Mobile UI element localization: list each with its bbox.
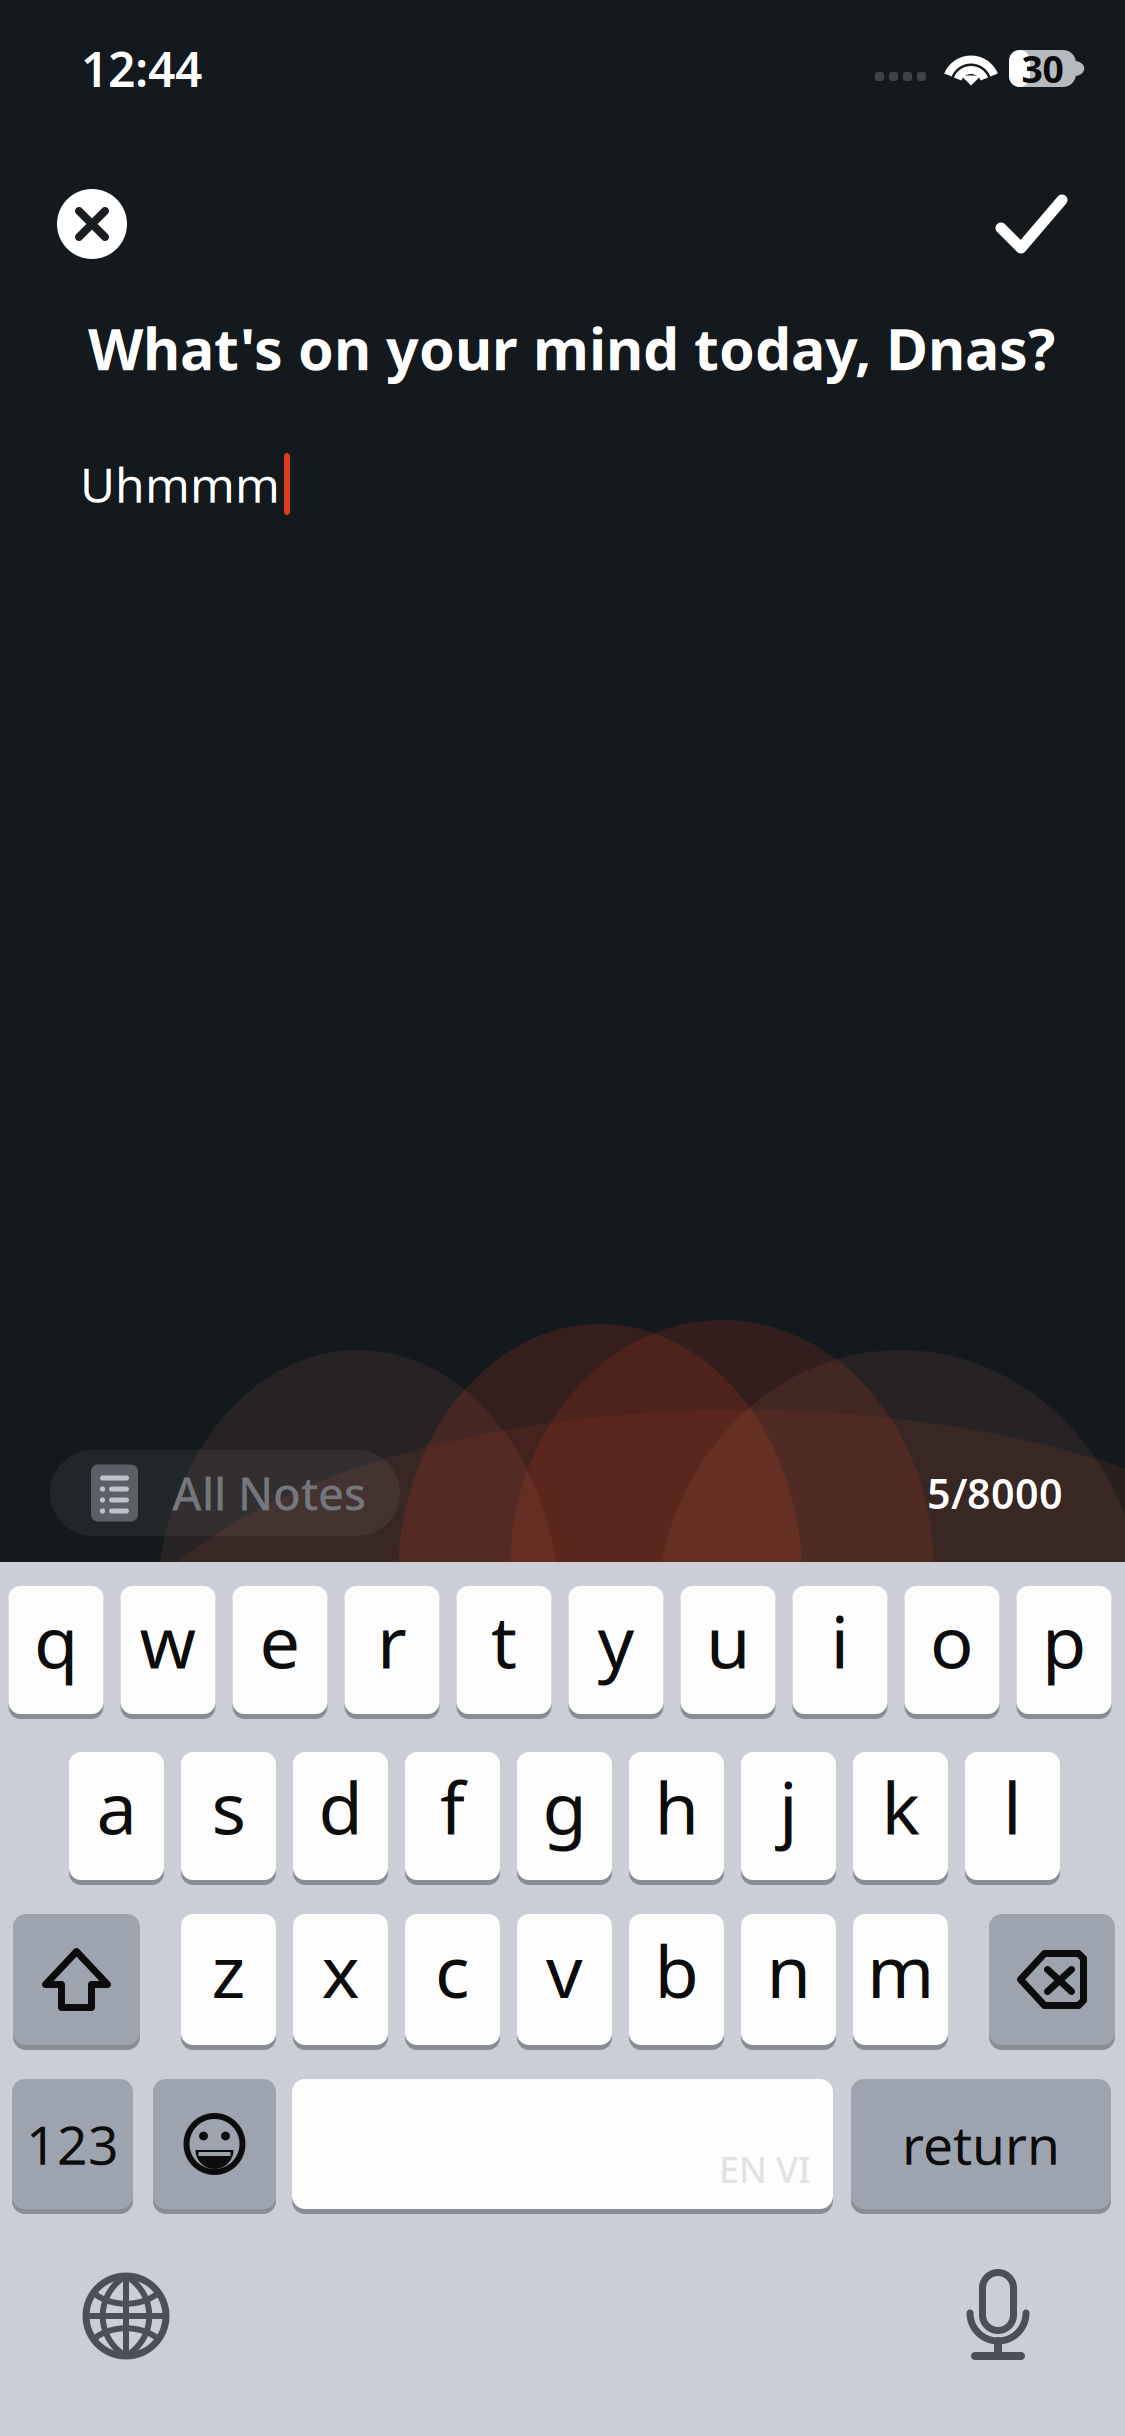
button[interactable]: a	[69, 1752, 164, 1885]
staticText: v	[546, 1922, 583, 2018]
staticText: h	[654, 1759, 698, 1854]
button[interactable]: y	[568, 1586, 663, 1719]
button[interactable]: n	[741, 1914, 836, 2050]
button[interactable]: u	[680, 1586, 775, 1719]
staticText: r	[377, 1593, 407, 1688]
staticText: 30	[1021, 44, 1063, 93]
button[interactable]: Save note	[981, 179, 1083, 269]
button[interactable]: q	[8, 1586, 103, 1719]
button[interactable]: return	[851, 2079, 1111, 2214]
staticText: b	[654, 1922, 698, 2018]
staticText: Uhmmm	[80, 452, 280, 516]
staticText: k	[881, 1759, 919, 1854]
staticText: x	[321, 1922, 359, 2018]
staticText: l	[1003, 1759, 1022, 1854]
button[interactable]: g	[517, 1752, 612, 1885]
staticText: z	[211, 1922, 245, 2018]
staticText: u	[706, 1593, 750, 1688]
staticText: g	[542, 1759, 586, 1854]
staticText: e	[259, 1593, 300, 1688]
button[interactable]	[13, 1914, 140, 2050]
button[interactable]: e	[232, 1586, 327, 1719]
staticText: EN VI	[719, 2145, 811, 2193]
staticText: y	[597, 1593, 634, 1688]
button[interactable]: z	[181, 1914, 276, 2050]
button[interactable]: m	[853, 1914, 948, 2050]
staticText: All Notes	[172, 1463, 366, 1523]
staticText: f	[440, 1759, 465, 1854]
staticText: m	[867, 1922, 934, 2018]
button[interactable]: All Notes	[50, 1450, 400, 1536]
button[interactable]: l	[965, 1752, 1060, 1885]
button[interactable]: Dictate	[943, 2261, 1053, 2371]
button[interactable]: v	[517, 1914, 612, 2050]
staticText: a	[96, 1759, 136, 1854]
button[interactable]: d	[293, 1752, 388, 1885]
button[interactable]: o	[904, 1586, 999, 1719]
staticText: p	[1042, 1593, 1086, 1688]
staticText: 12:44	[81, 37, 202, 100]
button[interactable]: p	[1016, 1586, 1111, 1719]
button[interactable]: r	[344, 1586, 439, 1719]
staticText: s	[211, 1759, 245, 1854]
button[interactable]: j	[741, 1752, 836, 1885]
button[interactable]: Close	[57, 189, 127, 259]
staticText: w	[139, 1593, 196, 1688]
button[interactable]: c	[405, 1914, 500, 2050]
staticText: q	[34, 1593, 78, 1688]
button[interactable]: f	[405, 1752, 500, 1885]
button[interactable]: x	[293, 1914, 388, 2050]
button[interactable]: i	[792, 1586, 887, 1719]
staticText: c	[435, 1922, 470, 2018]
button[interactable]: k	[853, 1752, 948, 1885]
button[interactable]: Switch keyboard	[71, 2261, 181, 2371]
staticText: What's on your mind today, Dnas?	[88, 310, 1055, 386]
button[interactable]: t	[456, 1586, 551, 1719]
button[interactable]: b	[629, 1914, 724, 2050]
button[interactable]: EN VI	[292, 2079, 833, 2214]
staticText: o	[930, 1593, 974, 1688]
button[interactable]: w	[120, 1586, 215, 1719]
button[interactable]: h	[629, 1752, 724, 1885]
staticText: 123	[26, 2109, 119, 2179]
staticText: j	[779, 1759, 798, 1854]
button[interactable]: s	[181, 1752, 276, 1885]
staticText: d	[318, 1759, 362, 1854]
staticText: 5/8000	[927, 1466, 1063, 1520]
staticText: n	[766, 1922, 810, 2018]
button[interactable]	[989, 1914, 1115, 2050]
staticText: return	[902, 2109, 1060, 2179]
button[interactable]	[153, 2079, 276, 2214]
button[interactable]: 123	[12, 2079, 133, 2214]
staticText: i	[830, 1593, 849, 1688]
staticText: t	[491, 1593, 517, 1688]
